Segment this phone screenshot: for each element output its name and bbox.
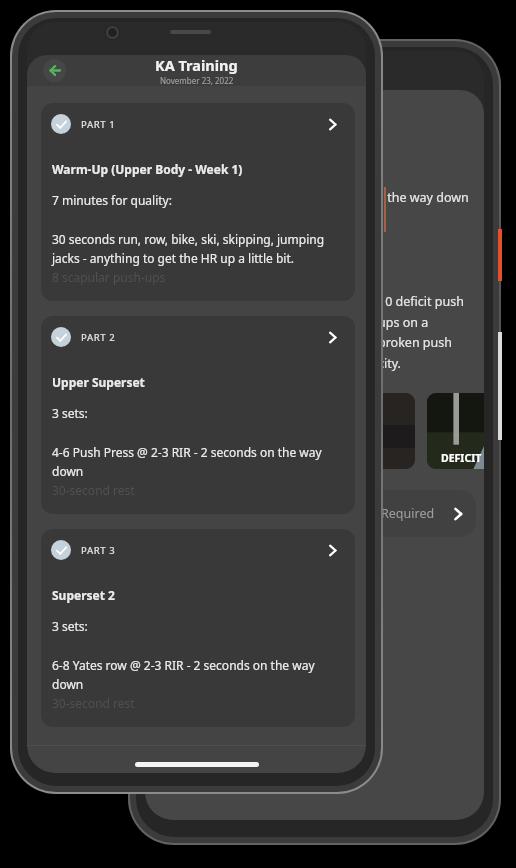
button[interactable]: PART 2 — [41, 316, 355, 514]
staticText: down — [52, 676, 84, 692]
button[interactable]: Required — [305, 490, 476, 537]
staticText: broken push — [378, 334, 452, 351]
staticText: 30 seconds run, row, bike, ski, skipping… — [52, 231, 325, 247]
staticText: Superset 2 — [52, 587, 115, 603]
staticText: PART 2 — [81, 331, 116, 344]
staticText: PART 3 — [81, 544, 116, 557]
button[interactable]: Back — [43, 59, 66, 82]
staticText: 30-second rest — [52, 482, 135, 498]
staticText: Warm-Up (Upper Body - Week 1) — [52, 161, 243, 177]
staticText: 30-second rest — [52, 695, 135, 711]
staticText: 2 seconds on the way down — [307, 189, 469, 206]
staticText: DEFICIT — [441, 451, 482, 465]
staticText: 3 sets: — [52, 405, 88, 421]
staticText: Upper Superset — [52, 374, 145, 390]
staticText: jacks - anything to get the HR up a litt… — [52, 250, 294, 266]
staticText: 10 deficit push — [378, 293, 464, 310]
staticText: 4-6 Push Press @ 2-3 RIR - 2 seconds on … — [52, 444, 322, 460]
staticText: KA Training — [155, 55, 238, 75]
staticText: PART 1 — [81, 118, 116, 131]
staticText: 6-8 Yates row @ 2-3 RIR - 2 seconds on t… — [52, 657, 315, 673]
staticText: city. — [378, 355, 401, 372]
staticText: 7 minutes for quality: — [52, 192, 172, 208]
staticText: 8 scapular push-ups — [52, 269, 166, 285]
staticText: Required — [381, 505, 435, 522]
button[interactable]: PART 3 — [41, 529, 355, 727]
staticText: down — [52, 463, 84, 479]
button[interactable]: PART 1 — [41, 103, 355, 301]
staticText: 3 sets: — [52, 618, 88, 634]
staticText: ups on a — [378, 314, 429, 331]
staticText: November 23, 2022 — [160, 75, 234, 86]
